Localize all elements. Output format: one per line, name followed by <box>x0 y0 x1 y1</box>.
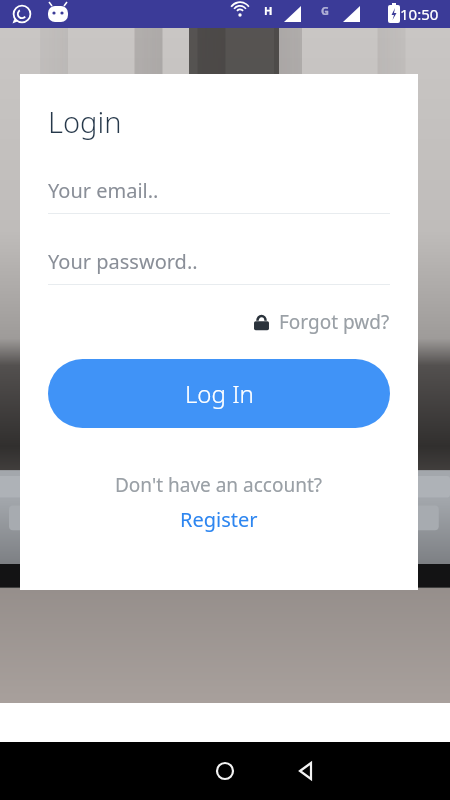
button[interactable]: Register <box>174 504 264 535</box>
other: Forgot password <box>253 314 270 331</box>
staticText: Log In <box>185 377 254 410</box>
staticText: Forgot pwd? <box>279 309 390 335</box>
button[interactable]: Recent apps <box>310 742 450 800</box>
button[interactable]: Back <box>80 742 450 800</box>
staticText: Your email.. <box>48 177 159 204</box>
staticText: H <box>264 3 273 18</box>
button[interactable]: Your email.. <box>48 177 390 214</box>
button[interactable]: Forgot password <box>48 309 390 335</box>
staticText: Register <box>180 506 258 533</box>
staticText: Login <box>48 102 122 141</box>
staticText: Your password.. <box>48 248 198 275</box>
button[interactable]: Log In <box>48 359 390 428</box>
staticText: 10:50 <box>400 4 439 24</box>
staticText: Don't have an account? <box>115 472 323 498</box>
button[interactable]: Home <box>0 742 450 800</box>
staticText: G <box>321 3 329 18</box>
button[interactable]: Your password.. <box>48 248 390 285</box>
